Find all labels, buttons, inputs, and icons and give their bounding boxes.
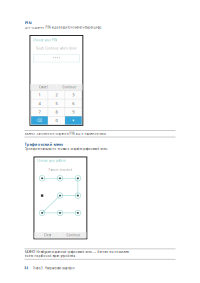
staticText: Touch Continue when done: [36, 47, 77, 50]
staticText: Глава 3. Настраиваем смартфон: [33, 266, 75, 270]
button[interactable]: Continue: [56, 84, 82, 90]
staticText: войти на рабочий экран устройства.: [24, 254, 75, 258]
staticText: 84: [24, 266, 28, 270]
button[interactable]: 9: [65, 108, 82, 116]
staticText: Cancel: [39, 85, 48, 89]
button[interactable]: Continue: [60, 232, 86, 238]
staticText: Choose your PIN: [33, 38, 57, 42]
staticText: 2: [55, 92, 57, 97]
staticText: Choose your pattern: [37, 159, 66, 162]
staticText: 0: [55, 118, 57, 123]
staticText: Проведите пальцем по точкам и создайте г…: [24, 147, 108, 151]
staticText: 1: [38, 92, 40, 97]
staticText: ВАЖНО! Не забудьте созданный графический…: [24, 250, 128, 254]
button[interactable]: ▾: [65, 116, 82, 124]
button[interactable]: 0: [48, 116, 65, 124]
staticText: Continue: [66, 233, 80, 237]
staticText: ВАЖНО! Запомните и сохраните PIN-код в н…: [24, 132, 106, 135]
staticText: ▾: [72, 118, 74, 123]
button[interactable]: 6: [65, 99, 82, 107]
staticText: 5: [55, 101, 57, 106]
button[interactable]: 2: [48, 91, 65, 99]
staticText: 7: [38, 109, 40, 114]
staticText: Pattern recorded: [48, 168, 72, 172]
staticText: ⌫: [36, 118, 42, 123]
button[interactable]: 3: [65, 91, 82, 99]
staticText: PIN: [24, 20, 31, 25]
staticText: Continue: [62, 85, 76, 89]
button[interactable]: Cancel: [30, 84, 56, 90]
button[interactable]: 7: [31, 108, 48, 116]
staticText: • • • •: [53, 56, 60, 60]
button[interactable]: 8: [48, 108, 65, 116]
button[interactable]: 1: [31, 91, 48, 99]
staticText: Clear: [44, 233, 51, 237]
button[interactable]: Clear: [34, 232, 60, 238]
button[interactable]: ⌫: [31, 116, 48, 124]
staticText: 6: [72, 101, 74, 106]
staticText: 8: [55, 109, 57, 114]
button[interactable]: 4: [31, 99, 48, 107]
staticText: 9: [72, 109, 74, 114]
staticText: 3: [72, 92, 74, 97]
staticText: 4: [38, 101, 40, 106]
button[interactable]: 5: [48, 99, 65, 107]
staticText: Графический ключ: [24, 142, 63, 147]
staticText: Для создания PIN-кода введите не менее ч…: [24, 26, 102, 29]
